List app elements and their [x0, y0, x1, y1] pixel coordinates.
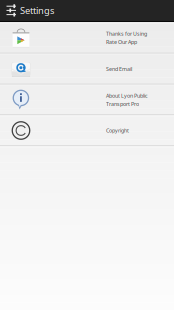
- staticText: About Lyon Public: [106, 92, 148, 99]
- button[interactable]: Thanks for Using: [0, 22, 174, 53]
- staticText: Copyright: [106, 127, 129, 134]
- staticText: Send Email: [106, 65, 132, 73]
- staticText: Settings: [20, 4, 54, 17]
- staticText: Thanks for Using: [106, 30, 147, 37]
- staticText: Rate Our App: [106, 38, 137, 45]
- button[interactable]: Send Email: [0, 53, 174, 84]
- button[interactable]: Settings: [0, 0, 174, 21]
- button[interactable]: About Lyon Public: [0, 84, 174, 115]
- staticText: Transport Pro: [106, 100, 139, 107]
- button[interactable]: Copyright: [0, 115, 174, 146]
